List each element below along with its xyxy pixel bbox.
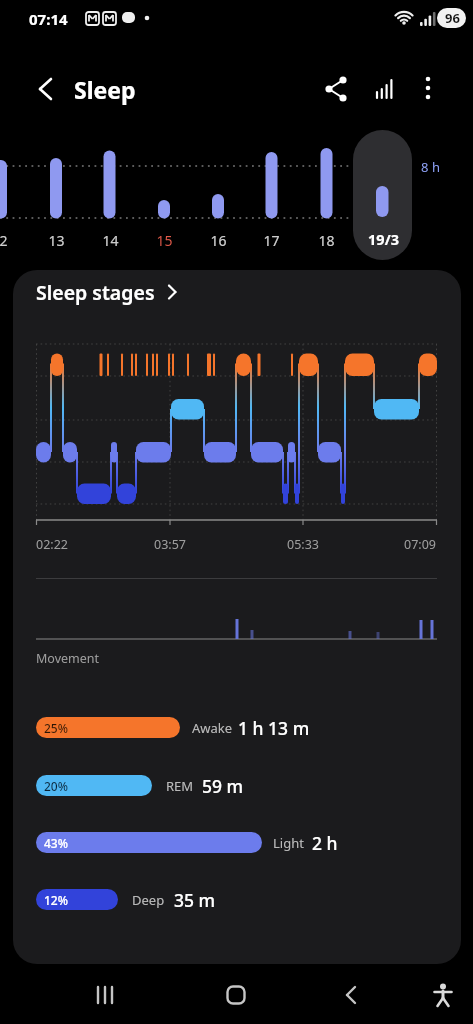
- staticText: 19/3: [368, 229, 399, 249]
- staticText: 05:33: [287, 536, 319, 553]
- staticText: 07:09: [404, 536, 436, 553]
- staticText: 8 h: [421, 158, 440, 176]
- staticText: 2 h: [312, 831, 338, 855]
- staticText: Light: [273, 834, 304, 852]
- button[interactable]: [36, 889, 118, 910]
- button[interactable]: [328, 971, 376, 1019]
- button[interactable]: [23, 276, 223, 310]
- staticText: 14: [102, 231, 119, 250]
- staticText: 18: [318, 231, 335, 250]
- staticText: 96: [445, 9, 460, 27]
- staticText: Sleep stages: [36, 279, 155, 306]
- button[interactable]: [353, 130, 412, 260]
- staticText: 16: [210, 231, 227, 250]
- button[interactable]: [81, 971, 129, 1019]
- staticText: 03:57: [154, 536, 186, 553]
- button[interactable]: [36, 717, 180, 738]
- staticText: Movement: [36, 650, 100, 667]
- button[interactable]: [36, 832, 262, 853]
- button[interactable]: [318, 71, 354, 107]
- staticText: 02:22: [36, 536, 68, 553]
- staticText: 35 m: [174, 888, 216, 912]
- button[interactable]: [419, 971, 467, 1019]
- staticText: Deep: [132, 891, 165, 909]
- button[interactable]: [28, 72, 62, 106]
- button[interactable]: [366, 71, 402, 107]
- staticText: 25%: [44, 720, 68, 736]
- button[interactable]: [412, 71, 444, 107]
- staticText: 15: [156, 231, 173, 250]
- staticText: 43%: [44, 835, 68, 851]
- staticText: 07:14: [29, 9, 68, 29]
- staticText: 12%: [44, 892, 68, 908]
- staticText: 2: [0, 231, 8, 250]
- staticText: 13: [48, 231, 65, 250]
- button[interactable]: [212, 971, 260, 1019]
- staticText: 17: [263, 231, 280, 250]
- staticText: 1 h 13 m: [238, 716, 310, 740]
- button[interactable]: [36, 775, 152, 796]
- staticText: Sleep: [74, 74, 136, 105]
- staticText: REM: [166, 777, 194, 795]
- staticText: 59 m: [202, 774, 244, 798]
- staticText: Awake: [192, 719, 233, 737]
- staticText: 20%: [44, 778, 68, 794]
